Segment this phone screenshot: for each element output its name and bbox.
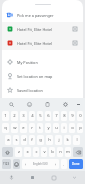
- button[interactable]: Done: [69, 159, 83, 169]
- button[interactable]: s: [13, 135, 19, 145]
- staticText: Done: [72, 162, 80, 166]
- staticText: 5: [39, 113, 42, 119]
- button[interactable]: g: [37, 135, 44, 145]
- button[interactable]: e: [20, 123, 27, 133]
- button[interactable]: Stickers: [20, 98, 38, 110]
- button[interactable]: Search: [2, 98, 20, 110]
- button[interactable]: Pick me a passenger: [2, 8, 83, 22]
- button[interactable]: 1: [2, 111, 9, 121]
- staticText: Hotel Fit, Elite Hotel: [17, 41, 73, 46]
- button[interactable]: Settings: [56, 98, 74, 110]
- button[interactable]: w: [11, 123, 18, 133]
- button[interactable]: z: [15, 147, 22, 157]
- staticText: b: [51, 149, 54, 155]
- button[interactable]: v: [41, 147, 47, 157]
- button[interactable]: b: [49, 147, 55, 157]
- button[interactable]: c: [33, 147, 39, 157]
- button[interactable]: Voice input: [0, 171, 22, 184]
- button[interactable]: f: [29, 135, 35, 145]
- staticText: l: [76, 137, 78, 143]
- staticText: f: [31, 137, 33, 143]
- staticText: Pick me a passenger: [17, 13, 78, 18]
- button[interactable]: 3: [20, 111, 27, 121]
- button[interactable]: Emoji: [13, 159, 20, 169]
- button[interactable]: Hotel Fit, Elite Hotel: [2, 36, 83, 50]
- button[interactable]: Shift: [2, 147, 13, 157]
- staticText: n: [59, 149, 62, 155]
- button[interactable]: t: [37, 123, 43, 133]
- staticText: r: [31, 125, 33, 131]
- staticText: a: [7, 137, 10, 143]
- button[interactable]: More options: [74, 98, 83, 110]
- button[interactable]: .: [61, 159, 67, 169]
- button[interactable]: d: [21, 135, 27, 145]
- button[interactable]: Home: [43, 171, 64, 184]
- button[interactable]: My Position: [2, 55, 83, 69]
- button[interactable]: u: [53, 123, 59, 133]
- staticText: ?123: [3, 162, 10, 166]
- button[interactable]: English (UK): [22, 159, 59, 169]
- button[interactable]: r: [29, 123, 35, 133]
- staticText: y: [47, 125, 50, 131]
- button[interactable]: 4: [29, 111, 35, 121]
- button[interactable]: q: [2, 123, 9, 133]
- staticText: 4: [31, 113, 34, 119]
- button[interactable]: x: [24, 147, 31, 157]
- staticText: Set location on map: [17, 74, 78, 79]
- staticText: w: [13, 125, 17, 131]
- staticText: My Position: [17, 60, 78, 65]
- staticText: h: [48, 137, 51, 143]
- button[interactable]: h: [46, 135, 53, 145]
- button[interactable]: Backspace: [73, 147, 83, 157]
- button[interactable]: Recent apps: [22, 171, 43, 184]
- staticText: u: [55, 125, 58, 131]
- staticText: x: [26, 149, 29, 155]
- staticText: m: [66, 149, 70, 155]
- button[interactable]: i: [61, 123, 67, 133]
- staticText: q: [4, 125, 7, 131]
- button[interactable]: j: [55, 135, 62, 145]
- staticText: 3: [22, 113, 25, 119]
- staticText: 7: [55, 113, 58, 119]
- staticText: e: [22, 125, 25, 131]
- button[interactable]: a: [5, 135, 11, 145]
- staticText: c: [35, 149, 38, 155]
- button[interactable]: p: [77, 123, 83, 133]
- button[interactable]: Hotel Fit, Elite Hotel: [2, 22, 83, 36]
- staticText: 6: [47, 113, 50, 119]
- staticText: d: [23, 137, 26, 143]
- staticText: t: [39, 125, 41, 131]
- staticText: Saved location: [17, 88, 78, 93]
- staticText: v: [43, 149, 46, 155]
- staticText: g: [39, 137, 42, 143]
- button[interactable]: ?123: [2, 159, 11, 169]
- button[interactable]: 5: [37, 111, 43, 121]
- button[interactable]: k: [64, 135, 71, 145]
- button[interactable]: 9: [69, 111, 75, 121]
- button[interactable]: 7: [53, 111, 59, 121]
- button[interactable]: Saved location: [2, 83, 83, 97]
- button[interactable]: y: [45, 123, 51, 133]
- staticText: s: [15, 137, 18, 143]
- staticText: 2: [13, 113, 16, 119]
- staticText: 0: [79, 113, 82, 119]
- button[interactable]: Hide keyboard: [64, 171, 85, 184]
- button[interactable]: Clipboard: [38, 98, 56, 110]
- button[interactable]: 8: [61, 111, 67, 121]
- button[interactable]: 2: [11, 111, 18, 121]
- staticText: z: [18, 149, 20, 155]
- button[interactable]: m: [65, 147, 71, 157]
- staticText: i: [63, 125, 65, 131]
- button[interactable]: o: [69, 123, 75, 133]
- button[interactable]: l: [73, 135, 80, 145]
- staticText: 1: [4, 113, 7, 119]
- button[interactable]: n: [57, 147, 63, 157]
- button[interactable]: 6: [45, 111, 51, 121]
- button[interactable]: Set location on map: [2, 69, 83, 83]
- staticText: k: [66, 137, 69, 143]
- staticText: j: [58, 137, 60, 143]
- staticText: p: [79, 125, 82, 131]
- staticText: .: [63, 162, 65, 167]
- button[interactable]: 0: [77, 111, 83, 121]
